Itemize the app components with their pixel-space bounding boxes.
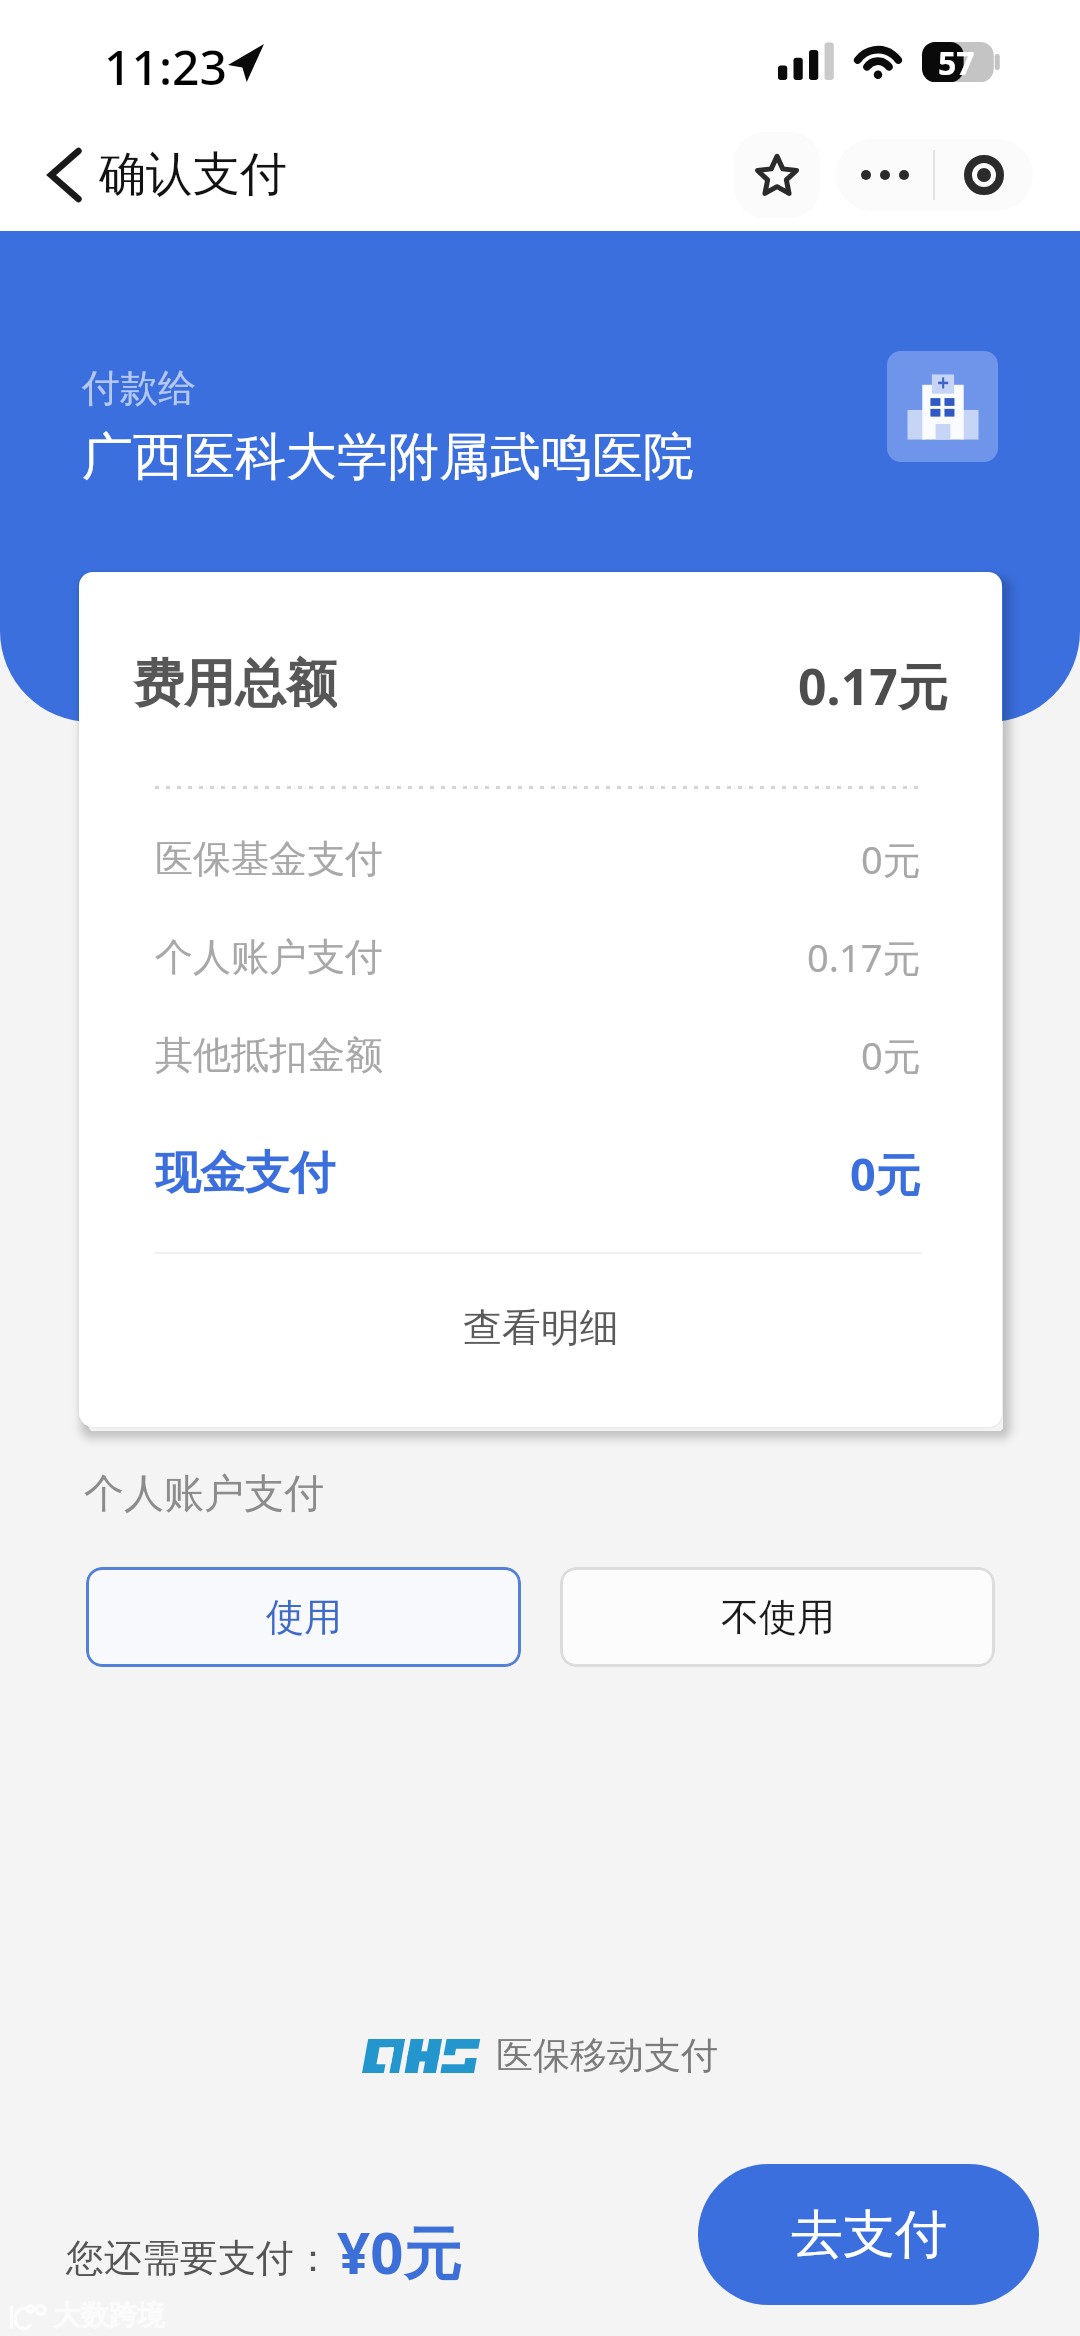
button[interactable]: 不使用 [560,1567,995,1667]
staticText: 0.17元 [807,931,921,983]
staticText: 费用总额 [133,652,337,712]
staticText: 确认支付 [99,145,287,204]
staticText: 0元 [861,1029,921,1081]
staticText: 付款给 [82,364,196,412]
staticText: 去支付 [791,2202,947,2268]
staticText: 查看明细 [463,1303,619,1352]
staticText: 现金支付 [155,1145,335,1202]
button[interactable]: 去支付 [698,2164,1039,2305]
staticText: 不使用 [721,1593,835,1641]
staticText: 医保基金支付 [155,835,383,883]
staticText: 广西医科大学附属武鸣医院 [82,425,694,489]
staticText: 0元 [861,833,921,885]
button[interactable]: 查看明细 [79,1241,1002,1414]
staticText: 医保移动支付 [496,2032,718,2079]
staticText: 其他抵扣金额 [155,1031,383,1079]
staticText: 大数跨境 [53,2298,165,2333]
staticText: 11:23 [104,34,227,99]
staticText: ¥0元 [337,2212,462,2291]
staticText: 0.17元 [798,652,948,712]
staticText: 0元 [850,1143,921,1203]
button[interactable]: 使用 [86,1567,521,1667]
button[interactable]: Back [45,118,287,231]
button[interactable]: Favorite [734,132,820,218]
button[interactable]: More options [836,139,933,211]
button[interactable]: Close [935,139,1033,211]
staticText: 个人账户支付 [84,1468,324,1518]
staticText: 使用 [266,1593,342,1641]
staticText: 个人账户支付 [155,933,383,981]
staticText: 57 [938,41,975,81]
other: Back [45,147,83,203]
staticText: 您还需要支付： [66,2234,332,2282]
